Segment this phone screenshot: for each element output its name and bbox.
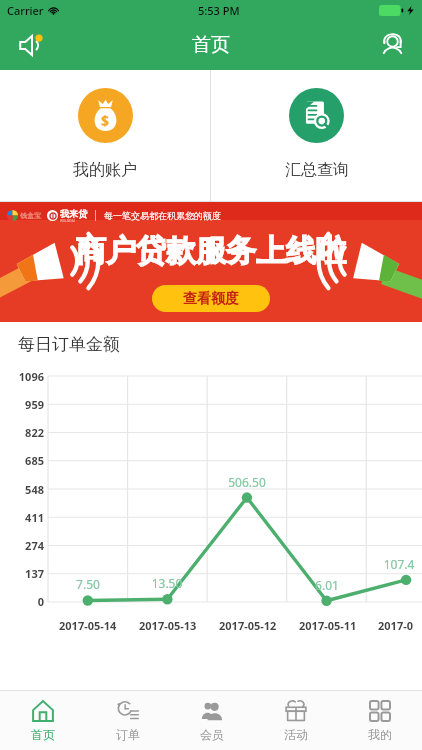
staticText: 548 (25, 482, 44, 497)
staticText: 查看额度 (183, 290, 239, 308)
staticText: 我的账户 (73, 160, 137, 180)
staticText: WOLAIDAI (60, 219, 75, 223)
staticText: 685 (25, 453, 44, 468)
staticText: 2017-05-12 (219, 618, 277, 633)
button[interactable]: 钱盒宝 (0, 202, 422, 322)
staticText: 822 (25, 425, 44, 440)
staticText: 我来贷 (60, 208, 87, 219)
staticText: 2017-0 (378, 618, 413, 633)
staticText: 5:53 PM (198, 3, 240, 18)
staticText: 7.50 (58, 576, 118, 592)
staticText: 2017-05-14 (59, 618, 117, 633)
staticText: 每一笔交易都在积累您的额度 (104, 210, 221, 221)
staticText: 0 (37, 594, 44, 609)
button[interactable]: 查看额度 (152, 285, 270, 312)
staticText: 107.4 (376, 556, 422, 572)
staticText: 会员 (200, 727, 224, 742)
staticText: 13.50 (137, 575, 197, 591)
staticText: 411 (25, 510, 44, 525)
button[interactable]: Notifications (10, 24, 52, 66)
staticText: 2017-05-13 (139, 618, 197, 633)
button[interactable]: 活动 (254, 691, 338, 750)
staticText: 1096 (18, 369, 44, 384)
staticText: 汇总查询 (285, 160, 349, 180)
staticText: 订单 (116, 727, 140, 742)
button[interactable]: Customer service (370, 23, 414, 67)
staticText: 137 (25, 566, 44, 581)
staticText: Carrier (7, 3, 44, 18)
staticText: 首页 (31, 727, 55, 742)
staticText: 2017-05-11 (299, 618, 357, 633)
staticText: 钱盒宝 (20, 211, 41, 220)
staticText: 首页 (192, 33, 230, 57)
staticText: 274 (25, 538, 44, 553)
staticText: 506.50 (217, 474, 277, 490)
button[interactable]: 首页 (0, 691, 85, 750)
button[interactable]: 订单 (85, 691, 170, 750)
staticText: 959 (25, 397, 44, 412)
button[interactable]: 汇总查询 (211, 70, 422, 201)
staticText: 活动 (284, 727, 308, 742)
button[interactable]: $ (0, 70, 210, 201)
staticText: 6.01 (297, 577, 357, 593)
button[interactable]: 会员 (170, 691, 254, 750)
staticText: 我的 (368, 727, 392, 742)
staticText: 每日订单金额 (18, 334, 120, 355)
button[interactable]: 我的 (338, 691, 422, 750)
staticText: $ (101, 111, 110, 130)
staticText: 商户贷款服务上线啦 (76, 232, 346, 270)
